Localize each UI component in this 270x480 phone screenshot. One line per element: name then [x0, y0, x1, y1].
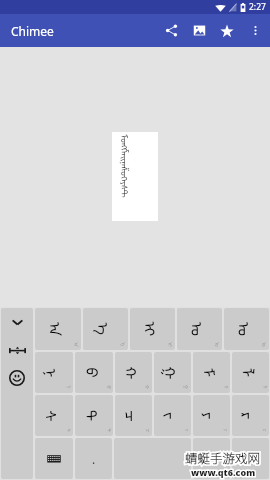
button[interactable]: Emoji: [1, 364, 33, 392]
button[interactable]: Insert image: [185, 14, 213, 47]
staticText: ᠷ: [238, 412, 264, 420]
button[interactable]: key 1830: [35, 395, 73, 436]
staticText: 蜻蜓手游戏网: [185, 448, 261, 466]
button[interactable]: Keyboard settings: [1, 336, 33, 364]
button[interactable]: key 1835: [154, 395, 191, 436]
staticText: ᠤ: [260, 342, 269, 347]
staticText: ᠬ: [120, 366, 146, 379]
staticText: ᠮ: [221, 385, 230, 389]
staticText: .: [92, 451, 96, 467]
staticText: ᠷ: [261, 429, 269, 432]
staticText: ᠪ: [104, 385, 113, 389]
button[interactable]: key 182a: [75, 352, 113, 393]
staticText: ᠮ: [199, 368, 225, 378]
button[interactable]: key 1824: [224, 308, 269, 350]
staticText: ᠪ: [81, 367, 107, 378]
staticText: Chimee: [11, 23, 54, 39]
button[interactable]: Share: [157, 14, 185, 47]
staticText: ᠶ: [199, 412, 225, 420]
button[interactable]: key 1820: [35, 308, 81, 350]
staticText: 2:27: [249, 1, 266, 13]
button[interactable]: Shift: [193, 438, 230, 479]
button[interactable]: key 182c: [115, 352, 152, 393]
staticText: ᠰ: [64, 428, 73, 432]
button[interactable]: key 182f: [232, 352, 269, 393]
staticText: www.qt6.com: [191, 466, 256, 478]
button[interactable]: key 1836: [193, 395, 230, 436]
staticText: ᠲ: [104, 428, 113, 432]
staticText: ᠵ: [183, 429, 191, 432]
staticText: ᠴ: [121, 410, 147, 422]
button[interactable]: Switch keyboard: [35, 438, 73, 479]
staticText: ᠡ: [92, 322, 118, 335]
staticText: ᠠ: [72, 342, 81, 347]
staticText: ᠭ: [182, 385, 191, 390]
staticText: ᠬ: [143, 385, 152, 390]
staticText: ᠢ: [139, 321, 165, 336]
staticText: ᠵ: [160, 412, 186, 420]
button[interactable]: key 1821: [83, 308, 128, 350]
staticText: ᠶ: [222, 429, 230, 432]
staticText: ᠨ: [41, 368, 67, 378]
staticText: ᠮᠣᠩᠭᠮᠠᠢᠨᠠᠱᠤᠬᠡᠶᠰᠲ: [117, 134, 132, 198]
button[interactable]: Enter: [232, 438, 269, 479]
staticText: ᠯ: [260, 385, 269, 389]
button[interactable]: Favorite: [213, 14, 241, 47]
staticText: 蜻蜓手游戏网: [185, 448, 261, 466]
staticText: ᠯ: [238, 368, 264, 378]
button[interactable]: Space: [114, 438, 191, 479]
staticText: ᠠ: [45, 322, 71, 336]
staticText: www.qt6.com: [191, 466, 256, 478]
staticText: ᠨ: [64, 385, 73, 389]
button[interactable]: key 182d: [154, 352, 191, 393]
button[interactable]: .: [75, 438, 112, 479]
button[interactable]: Hide keyboard: [1, 308, 33, 336]
staticText: ᠲ: [81, 410, 107, 422]
staticText: ᠢ: [166, 342, 175, 347]
button[interactable]: key 1834: [115, 395, 152, 436]
button[interactable]: key 182e: [193, 352, 230, 393]
staticText: ᠣ: [187, 322, 213, 336]
staticText: ᠴ: [143, 428, 152, 432]
button[interactable]: key 1828: [35, 352, 73, 393]
staticText: ᠰ: [41, 410, 67, 422]
button[interactable]: key 1832: [75, 395, 113, 436]
button[interactable]: key 1822: [130, 308, 175, 350]
staticText: ᠡ: [119, 342, 128, 347]
staticText: ᠭ: [159, 366, 185, 379]
button[interactable]: key 1823: [177, 308, 222, 350]
staticText: ᠣ: [213, 342, 222, 347]
staticText: ᠤ: [234, 322, 260, 336]
button[interactable]: key 1837: [232, 395, 269, 436]
button[interactable]: More options: [241, 14, 269, 47]
